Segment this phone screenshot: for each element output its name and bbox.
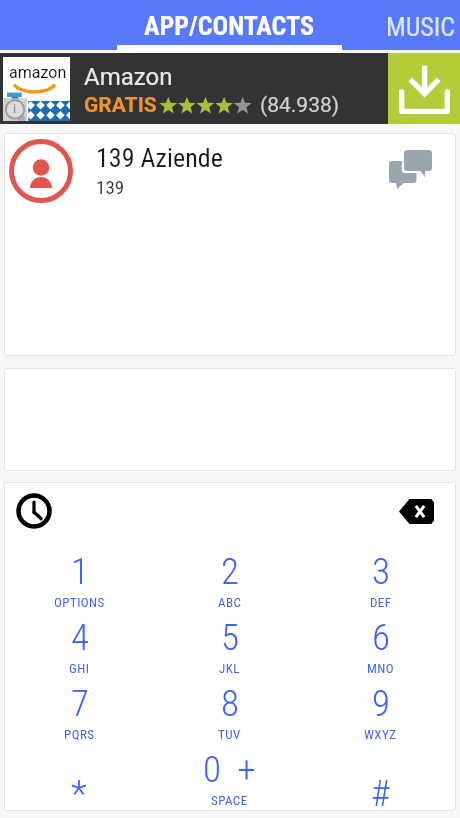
- staticText: 6: [372, 616, 390, 659]
- button[interactable]: MUSIC: [342, 0, 460, 50]
- staticText: MUSIC: [386, 12, 455, 42]
- button[interactable]: *: [4, 737, 154, 803]
- staticText: MNO: [367, 661, 395, 676]
- button[interactable]: #: [305, 737, 456, 803]
- staticText: 8: [221, 682, 239, 725]
- staticText: PQRS: [64, 727, 95, 742]
- staticText: 7: [71, 682, 89, 725]
- staticText: DEF: [370, 595, 392, 610]
- button[interactable]: Call history: [10, 487, 58, 535]
- staticText: (84.938): [260, 93, 340, 118]
- staticText: GHI: [69, 661, 90, 676]
- button[interactable]: 2: [154, 539, 305, 605]
- button[interactable]: Backspace: [392, 487, 440, 535]
- button[interactable]: amazon: [0, 53, 388, 124]
- button[interactable]: 1: [4, 539, 154, 605]
- staticText: amazon: [9, 63, 67, 82]
- button[interactable]: APP/CONTACTS: [117, 0, 342, 50]
- staticText: i: [13, 101, 17, 116]
- button[interactable]: 6: [305, 605, 456, 671]
- staticText: #: [371, 772, 391, 811]
- staticText: *: [71, 772, 87, 811]
- staticText: 9: [372, 682, 390, 725]
- button[interactable]: 4: [4, 605, 154, 671]
- button[interactable]: 5: [154, 605, 305, 671]
- staticText: OPTIONS: [54, 595, 105, 610]
- button[interactable]: 7: [4, 671, 154, 737]
- staticText: 0 +: [203, 748, 256, 791]
- button[interactable]: [4, 368, 456, 471]
- staticText: SPACE: [211, 793, 248, 808]
- staticText: ABC: [218, 595, 242, 610]
- button[interactable]: 139 Aziende: [4, 133, 456, 208]
- button[interactable]: 9: [305, 671, 456, 737]
- staticText: JKL: [219, 661, 240, 676]
- staticText: APP/CONTACTS: [144, 11, 315, 41]
- button[interactable]: 8: [154, 671, 305, 737]
- staticText: 139: [96, 176, 125, 198]
- staticText: 139 Aziende: [96, 143, 223, 173]
- button[interactable]: Message: [383, 138, 449, 204]
- staticText: 1: [71, 550, 89, 593]
- staticText: TUV: [218, 727, 241, 742]
- button[interactable]: 3: [305, 539, 456, 605]
- staticText: 4: [71, 616, 89, 659]
- staticText: GRATIS: [84, 93, 157, 118]
- staticText: 5: [221, 616, 239, 659]
- button[interactable]: Download: [388, 53, 460, 124]
- staticText: WXYZ: [364, 727, 397, 742]
- staticText: Amazon: [84, 63, 173, 91]
- button[interactable]: 0 +: [154, 737, 305, 803]
- staticText: 3: [372, 550, 390, 593]
- staticText: 2: [221, 550, 239, 593]
